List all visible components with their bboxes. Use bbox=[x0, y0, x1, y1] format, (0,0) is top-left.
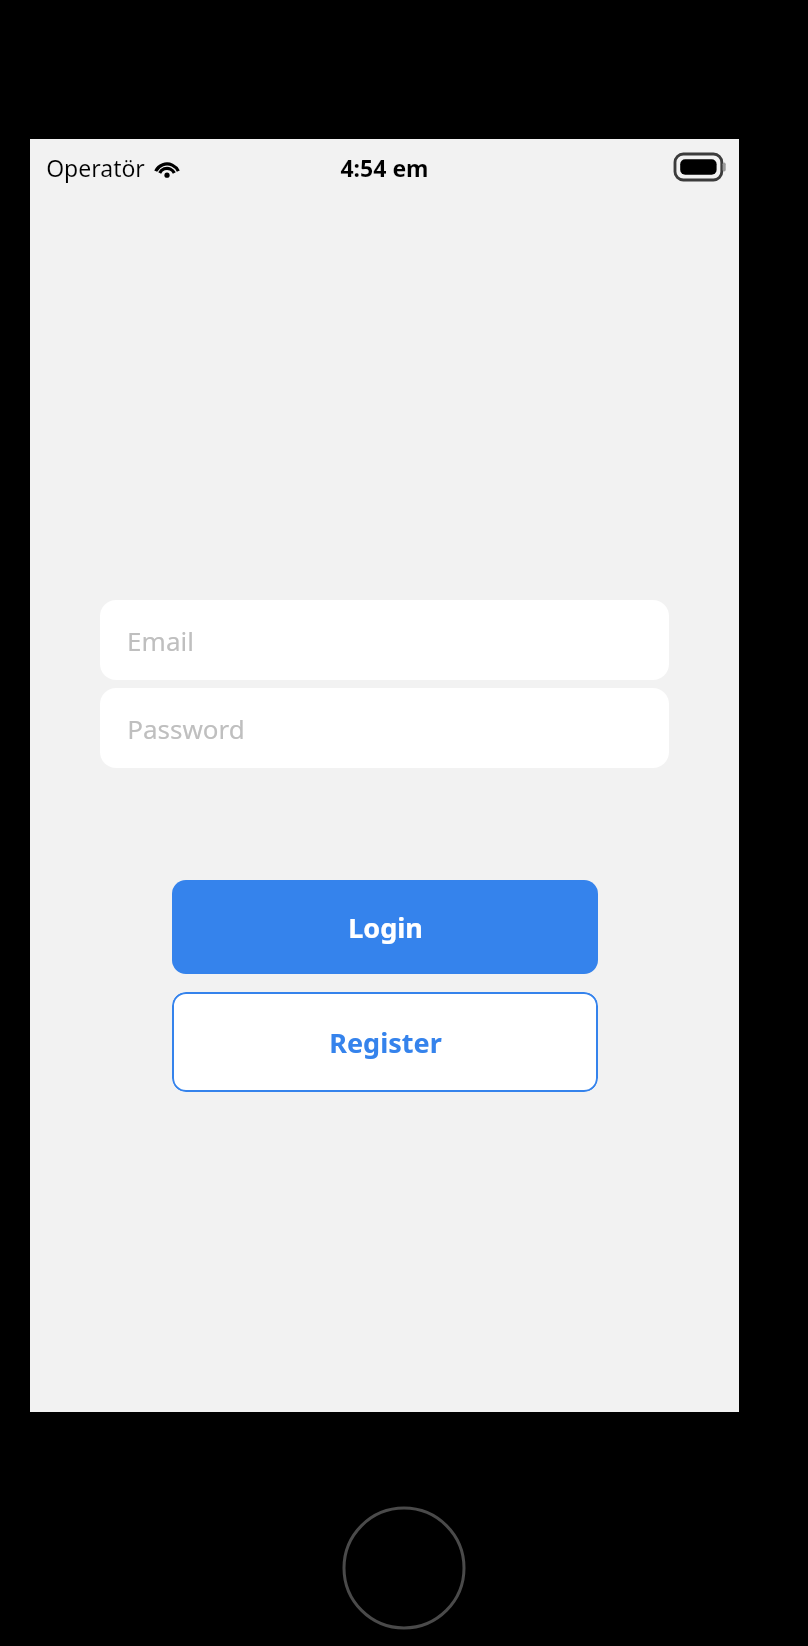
button[interactable]: Register bbox=[172, 992, 598, 1092]
staticText: Register bbox=[329, 1024, 442, 1061]
staticText: Email bbox=[127, 623, 194, 658]
staticText: Operatör bbox=[46, 152, 145, 183]
button[interactable]: Password bbox=[100, 688, 669, 768]
staticText: Password bbox=[127, 711, 245, 746]
button[interactable]: Login bbox=[172, 880, 598, 974]
button[interactable]: Home bbox=[342, 1506, 466, 1630]
staticText: Login bbox=[348, 909, 423, 946]
staticText: 4:54 em bbox=[340, 152, 429, 183]
button[interactable]: Email bbox=[100, 600, 669, 680]
